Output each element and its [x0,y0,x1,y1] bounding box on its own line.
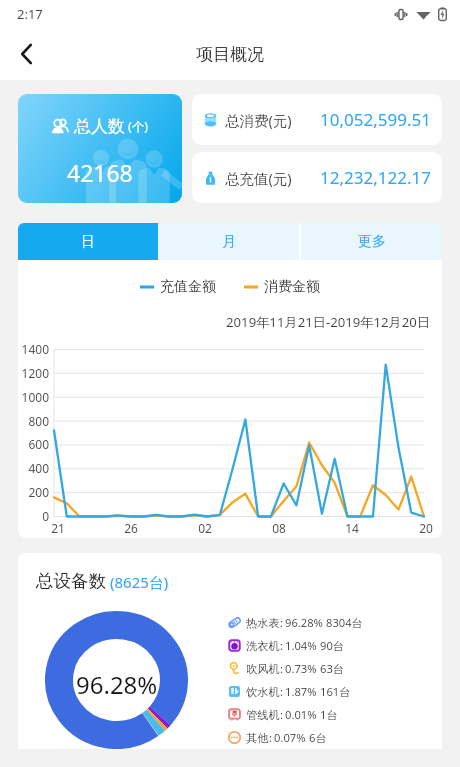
staticText: 200 [18,484,49,500]
staticText: 0 [18,508,49,524]
staticText: : [280,638,283,653]
staticText: 2019年11月21日-2019年12月20日 [226,313,431,331]
staticText: 1200 [18,365,49,381]
staticText: : [280,707,283,722]
button[interactable]: 日 [18,223,158,260]
staticText: 管线机 [246,708,280,722]
staticText: 2:17 [17,5,43,23]
staticText: 总消费(元) [225,110,292,130]
staticText: 12,232,122.17 [320,166,431,189]
staticText: 161台 [320,684,351,699]
staticText: 02 [192,520,218,536]
staticText: : [280,615,283,630]
staticText: 26 [118,520,144,536]
staticText: 更多 [358,233,386,251]
staticText: 项目概况 [196,44,264,65]
staticText: 400 [18,460,49,476]
staticText: 6台 [309,730,327,745]
staticText: 吹风机 [246,662,280,676]
button[interactable]: 更多 [301,223,442,260]
staticText: (个) [128,118,149,135]
staticText: 800 [18,413,49,429]
staticText: 总充值(元) [225,168,292,188]
staticText: 10,052,599.51 [320,108,431,131]
staticText: 20 [413,520,439,536]
staticText: 14 [339,520,365,536]
staticText: 洗衣机 [246,639,280,653]
staticText: 08 [266,520,292,536]
staticText: 饮水机 [246,685,280,699]
staticText: 总人数 [74,116,125,137]
button[interactable]: 总人数 [18,94,182,203]
staticText: 8304台 [326,615,363,630]
staticText: 600 [18,436,49,452]
button[interactable]: Back [6,33,48,75]
staticText: 63台 [320,661,344,676]
staticText: : [280,684,283,699]
staticText: 90台 [320,638,344,653]
staticText: 1.04% [285,638,317,653]
staticText: : [280,661,283,676]
staticText: 96.28% [76,668,158,701]
staticText: 0.73% [285,661,317,676]
staticText: 1000 [18,389,49,405]
button[interactable]: 总充值(元) [192,152,442,203]
button[interactable]: 月 [158,223,299,260]
staticText: 1400 [18,341,49,357]
staticText: 总设备数 [36,570,106,592]
staticText: 1台 [320,707,338,722]
staticText: 42168 [67,157,133,188]
staticText: 96.28% [285,615,323,630]
staticText: 21 [45,520,71,536]
staticText: 1.87% [285,684,317,699]
staticText: 0.01% [285,707,317,722]
staticText: 0.07% [274,730,306,745]
staticText: (8625台) [110,572,169,592]
staticText: 其他 [246,731,269,745]
staticText: 消费金额 [264,278,320,296]
staticText: : [269,730,272,745]
staticText: 充值金额 [160,278,216,296]
button[interactable]: 总消费(元) [192,94,442,145]
staticText: 热水表 [246,616,280,630]
staticText: 月 [222,233,236,251]
staticText: 日 [81,233,95,251]
